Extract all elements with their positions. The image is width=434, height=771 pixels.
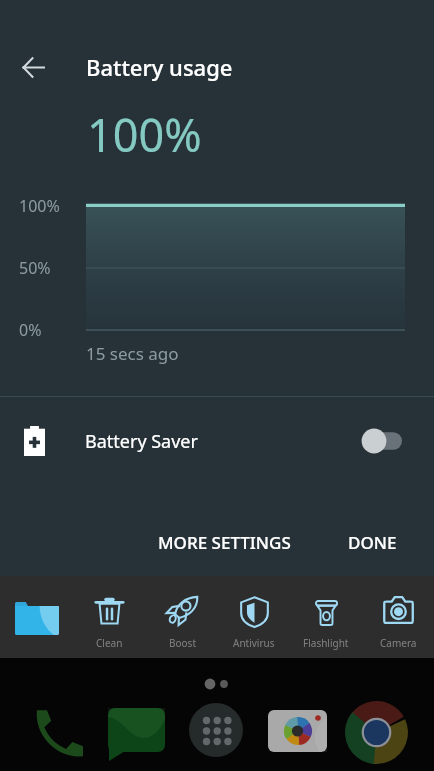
staticText: Antivirus <box>233 636 275 650</box>
button[interactable]: Files <box>0 576 73 658</box>
staticText: Clean <box>96 636 123 650</box>
staticText: 100% <box>87 104 202 165</box>
button[interactable]: Camera <box>362 576 434 658</box>
button[interactable]: MORE SETTINGS <box>144 521 305 563</box>
staticText: Camera <box>380 636 417 650</box>
staticText: Battery Saver <box>85 429 198 454</box>
button[interactable]: Boost <box>146 576 218 658</box>
staticText: Battery usage <box>86 52 233 82</box>
button[interactable]: Battery Saver toggle <box>350 424 402 458</box>
staticText: MORE SETTINGS <box>158 531 291 553</box>
button[interactable]: Back <box>13 47 54 88</box>
button[interactable]: DONE <box>334 521 411 563</box>
button[interactable]: Battery Saver <box>0 397 434 485</box>
staticText: Flashlight <box>303 636 349 650</box>
staticText: 100% <box>19 195 60 217</box>
staticText: 0% <box>19 319 42 341</box>
staticText: 15 secs ago <box>86 342 179 365</box>
staticText: 50% <box>19 257 51 279</box>
staticText: DONE <box>348 531 397 553</box>
button[interactable]: Flashlight <box>290 576 362 658</box>
button[interactable]: Antivirus <box>218 576 290 658</box>
button[interactable]: Clean <box>73 576 146 658</box>
staticText: Boost <box>169 636 196 650</box>
